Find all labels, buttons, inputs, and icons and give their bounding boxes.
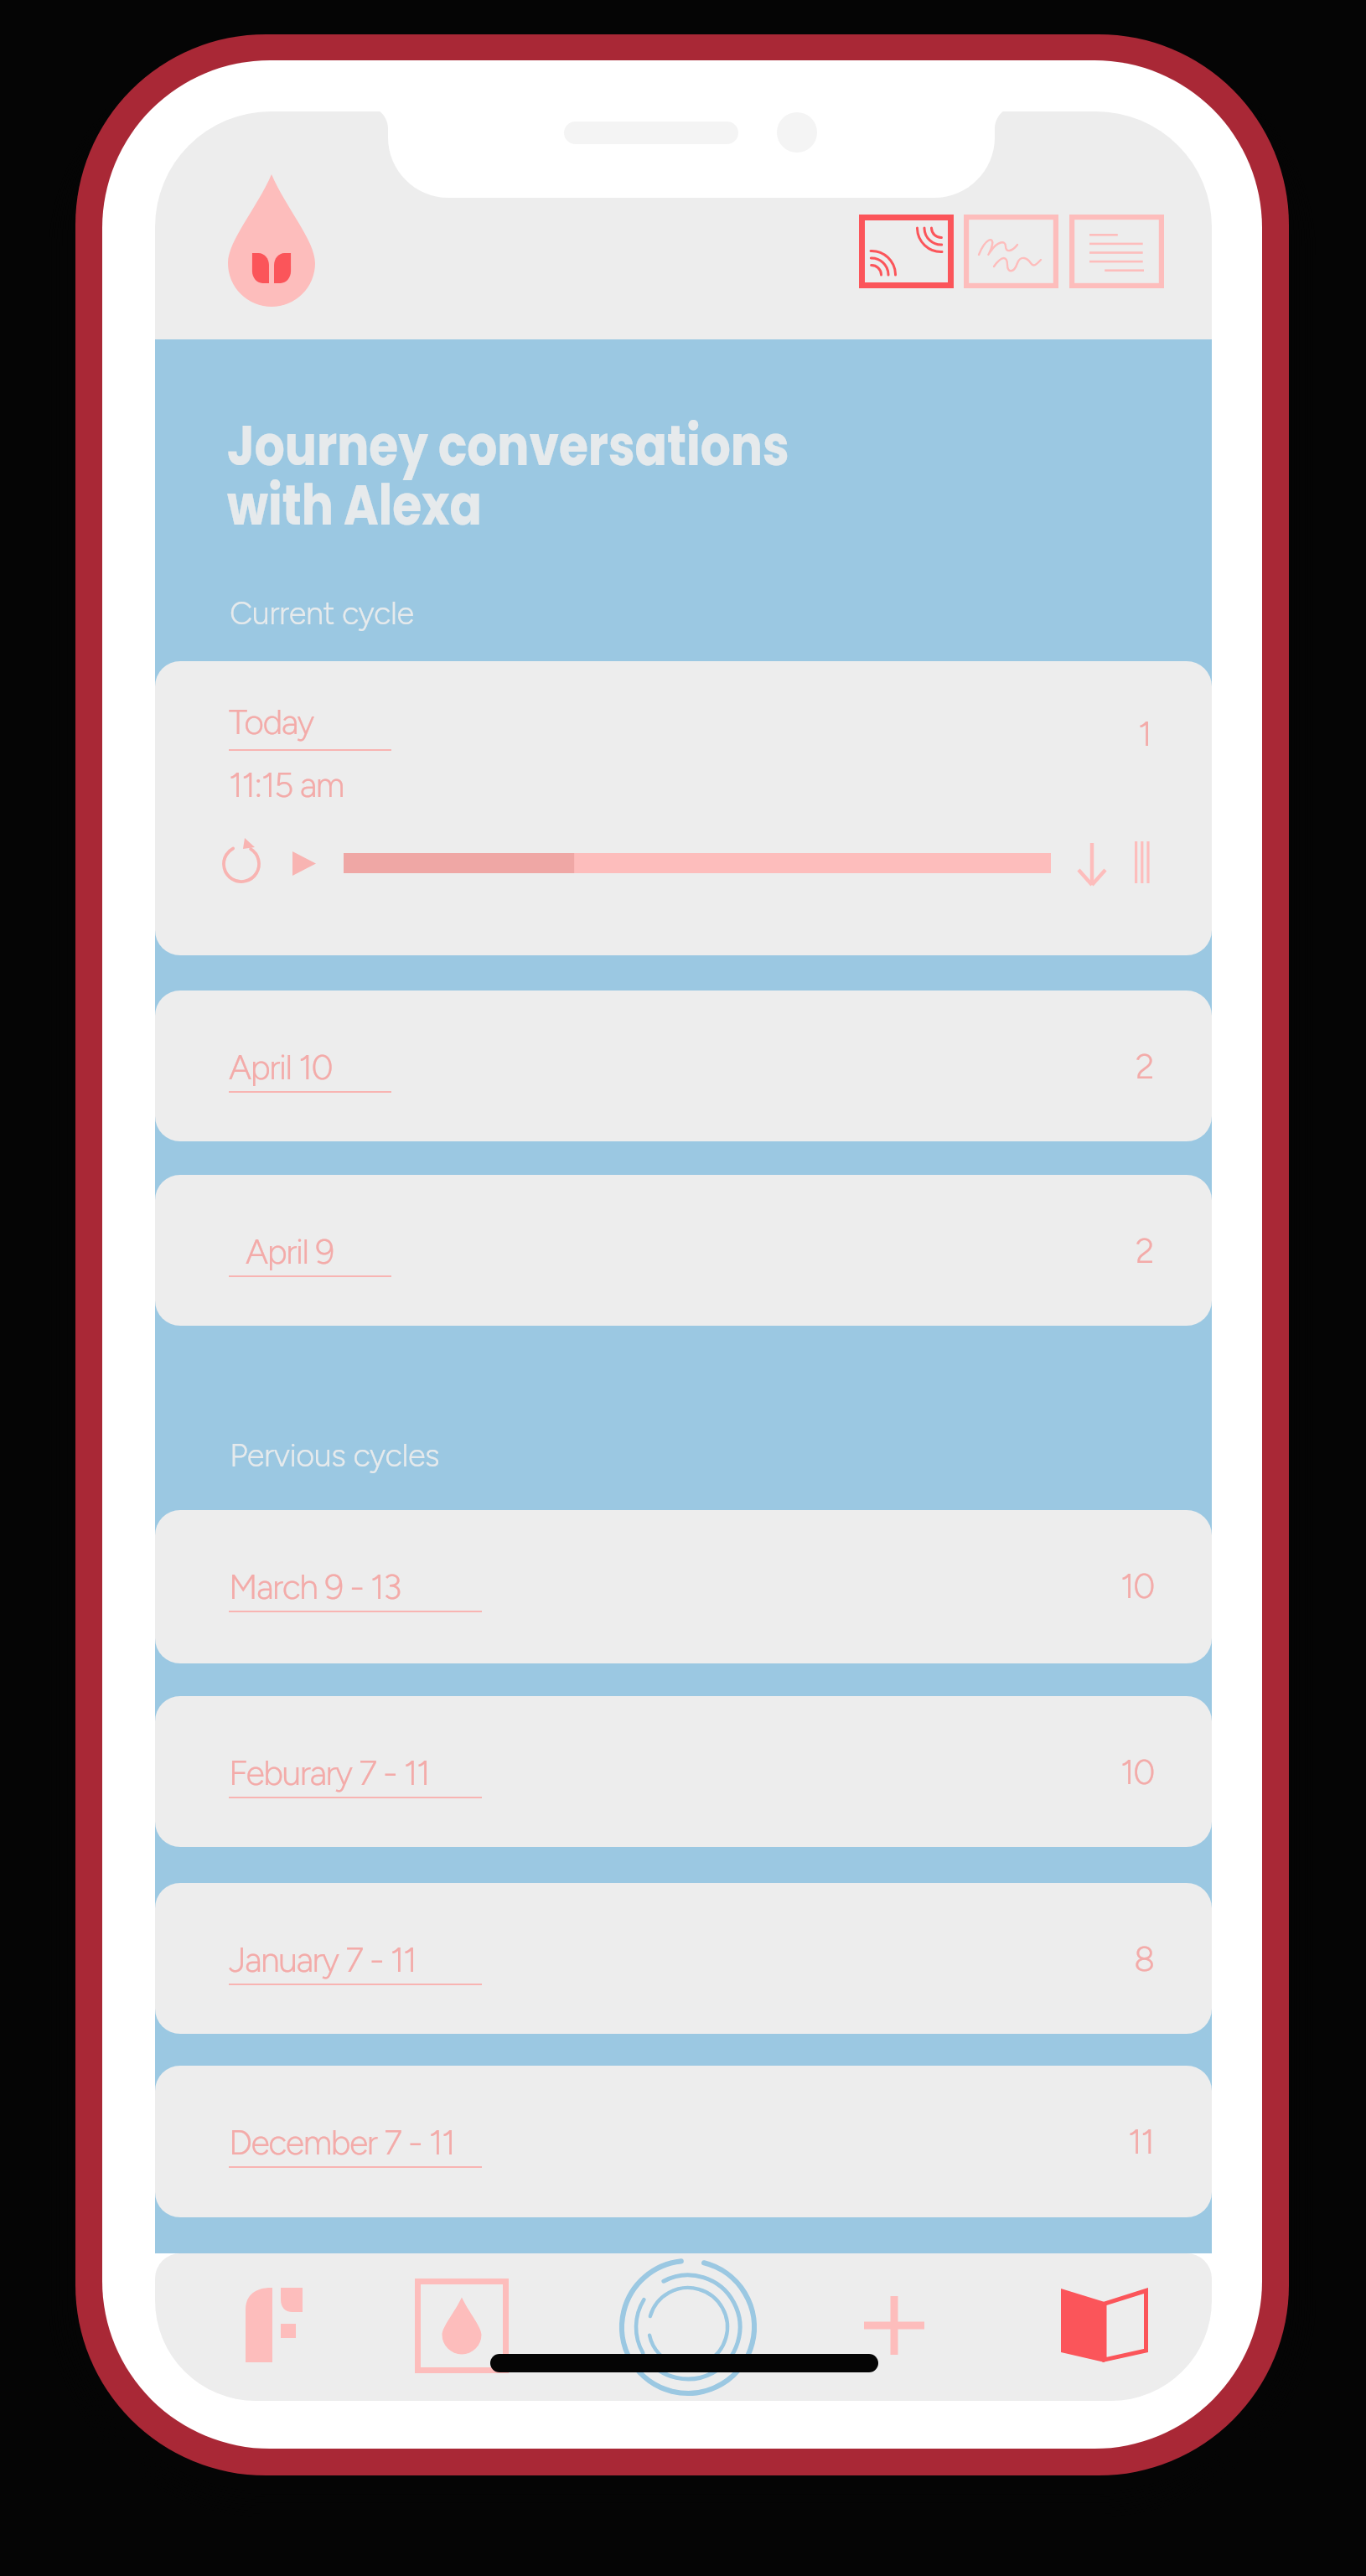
button[interactable]: Voice recordings bbox=[859, 215, 954, 288]
staticText: January 7 - 11 bbox=[229, 1939, 417, 1980]
button[interactable]: More bbox=[1135, 841, 1151, 883]
staticText: 10 bbox=[1120, 1751, 1154, 1792]
staticText: Journey conversations with Alexa bbox=[227, 406, 789, 545]
button[interactable]: Play bbox=[292, 851, 316, 876]
button[interactable]: Feburary 7 - 11 bbox=[155, 1696, 1212, 1847]
button[interactable]: April 10 bbox=[155, 991, 1212, 1141]
staticText: 2 bbox=[1136, 1230, 1154, 1271]
button[interactable]: Replay bbox=[220, 842, 263, 886]
button[interactable]: March 9 - 13 bbox=[155, 1510, 1212, 1663]
staticText: 8 bbox=[1134, 1938, 1154, 1979]
staticText: April 9 bbox=[246, 1231, 334, 1272]
button[interactable]: Notes bbox=[964, 215, 1058, 288]
staticText: Today bbox=[229, 701, 313, 742]
staticText: March 9 - 13 bbox=[229, 1566, 401, 1607]
button[interactable]: Add bbox=[864, 2296, 924, 2355]
staticText: 1 bbox=[1138, 713, 1151, 754]
button[interactable]: Today bbox=[155, 661, 1212, 955]
button[interactable]: Transcripts bbox=[1069, 215, 1164, 288]
staticText: Feburary 7 - 11 bbox=[229, 1752, 430, 1793]
button[interactable]: Download bbox=[1072, 841, 1112, 885]
button[interactable]: App logo bbox=[228, 174, 315, 307]
button[interactable]: Record bbox=[613, 2253, 763, 2401]
staticText: 10 bbox=[1120, 1565, 1154, 1606]
staticText: 2 bbox=[1136, 1046, 1154, 1087]
button[interactable]: April 9 bbox=[155, 1175, 1212, 1326]
button[interactable]: Library bbox=[1061, 2289, 1148, 2362]
staticText: 11 bbox=[1128, 2121, 1154, 2162]
button[interactable]: December 7 - 11 bbox=[155, 2066, 1212, 2217]
button[interactable]: Cycle bbox=[415, 2279, 509, 2373]
staticText: December 7 - 11 bbox=[229, 2122, 455, 2163]
button[interactable]: January 7 - 11 bbox=[155, 1883, 1212, 2034]
button[interactable]: Home bbox=[246, 2288, 303, 2362]
staticText: Pervious cycles bbox=[230, 1436, 440, 1475]
button[interactable]: Seek bbox=[344, 853, 1051, 873]
staticText: Current cycle bbox=[230, 594, 414, 633]
staticText: April 10 bbox=[229, 1047, 333, 1088]
staticText: 11:15 am bbox=[229, 764, 344, 805]
